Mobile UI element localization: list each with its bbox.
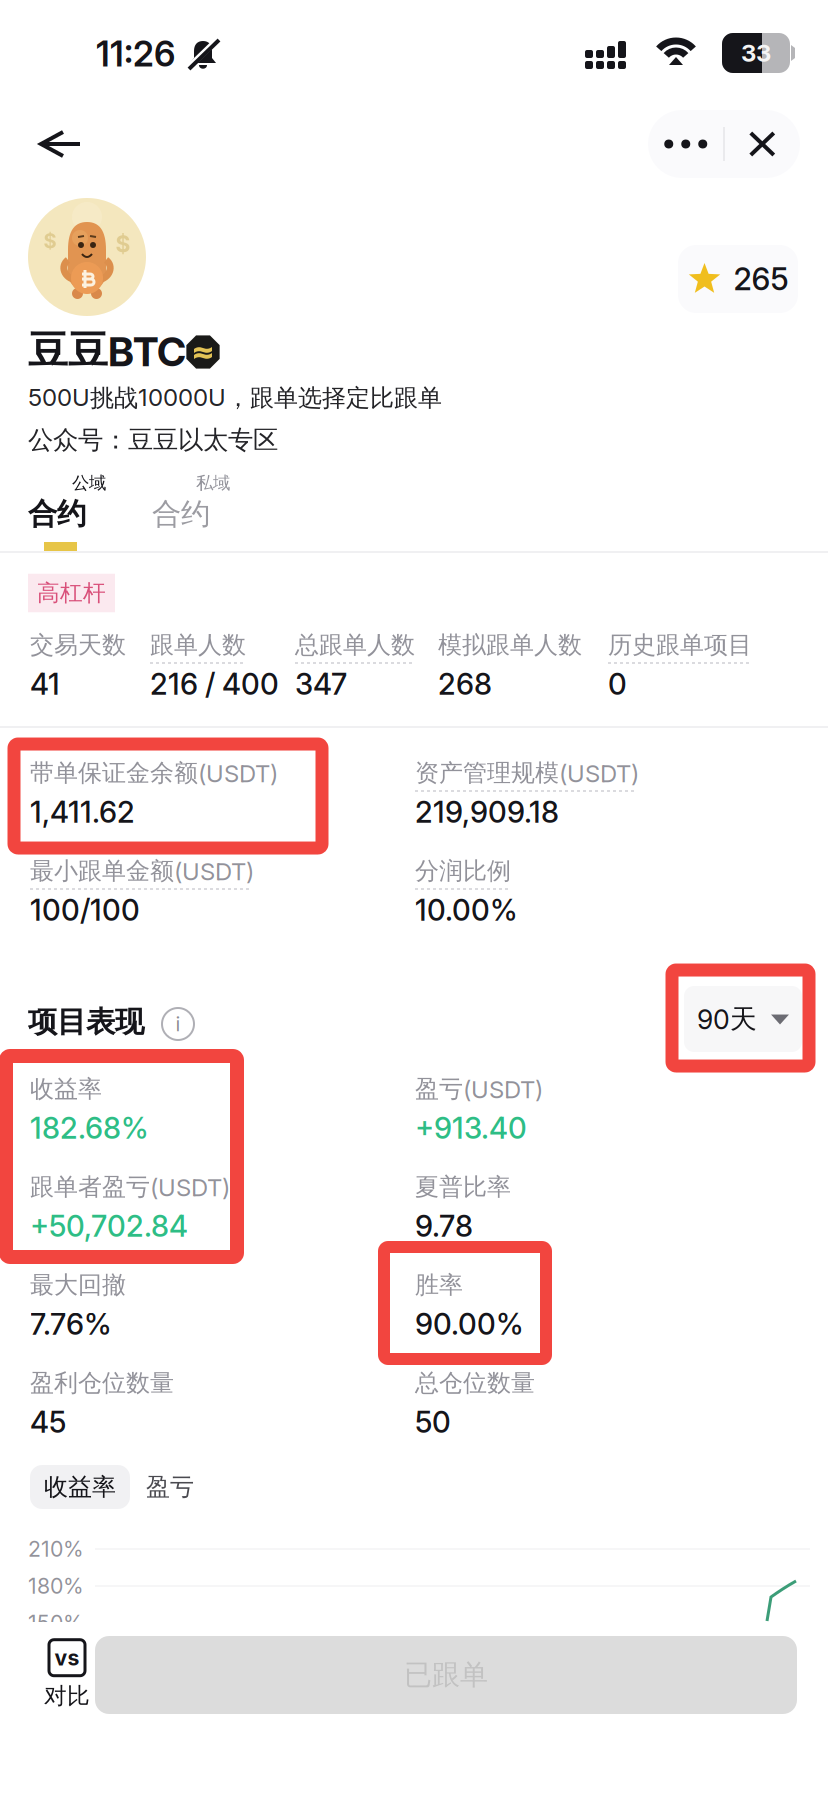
staticText: 盈利仓位数量 xyxy=(30,1368,174,1398)
button[interactable]: More options xyxy=(648,110,723,178)
staticText: 150% xyxy=(28,1610,84,1636)
staticText: 带单保证金余额(USDT) xyxy=(30,758,278,788)
staticText: 模拟跟单人数 xyxy=(438,630,582,660)
button[interactable]: 90天 xyxy=(684,986,802,1052)
staticText: 跟单人数 xyxy=(150,630,246,660)
button[interactable]: 265 xyxy=(678,245,798,313)
staticText: 公众号：豆豆以太专区 xyxy=(28,424,278,456)
staticText: 已跟单 xyxy=(404,1657,488,1693)
staticText: 45 xyxy=(30,1404,66,1440)
staticText: 7.76% xyxy=(30,1306,112,1342)
staticText: 90天 xyxy=(697,1002,757,1036)
staticText: $ xyxy=(115,230,130,258)
staticText: 10.00% xyxy=(415,892,518,928)
staticText: 对比 xyxy=(44,1682,90,1710)
staticText: 219,909.18 xyxy=(415,794,559,830)
staticText: +913.40 xyxy=(415,1110,527,1146)
staticText: 资产管理规模(USDT) xyxy=(415,758,639,788)
button[interactable]: 私域 xyxy=(148,468,266,554)
staticText: 收益率 xyxy=(30,1074,102,1104)
staticText: 90.00% xyxy=(415,1306,524,1342)
staticText: 41 xyxy=(30,666,60,702)
staticText: 182.68% xyxy=(30,1110,149,1146)
staticText: 最小跟单金额(USDT) xyxy=(30,856,254,886)
staticText: 9.78 xyxy=(415,1208,473,1244)
staticText: 347 xyxy=(295,666,347,702)
staticText: vs xyxy=(54,1645,79,1671)
staticText: 33 xyxy=(741,38,771,67)
staticText: 交易天数 xyxy=(30,630,126,660)
staticText: 总跟单人数 xyxy=(295,630,415,660)
staticText: 500U挑战10000U，跟单选择定比跟单 xyxy=(28,383,442,413)
button[interactable]: 已跟单 xyxy=(95,1636,797,1714)
staticText: 合约 xyxy=(152,495,210,532)
staticText: 胜率 xyxy=(415,1270,463,1300)
staticText: 夏普比率 xyxy=(415,1172,511,1202)
staticText: 私域 xyxy=(196,472,230,494)
staticText: 总仓位数量 xyxy=(415,1368,535,1398)
staticText: 210% xyxy=(28,1536,84,1562)
staticText: 0 xyxy=(608,666,627,702)
button[interactable]: 收益率 xyxy=(30,1465,130,1509)
button[interactable]: 盈亏 xyxy=(146,1465,226,1509)
staticText: 100/100 xyxy=(30,892,140,928)
staticText: 最大回撤 xyxy=(30,1270,126,1300)
staticText: 公域 xyxy=(72,472,106,494)
staticText: +50,702.84 xyxy=(30,1208,188,1244)
button[interactable]: Close xyxy=(725,110,800,178)
staticText: 180% xyxy=(28,1573,84,1599)
staticText: 216 / 400 xyxy=(150,666,279,702)
staticText: 50 xyxy=(415,1404,451,1440)
staticText: i xyxy=(175,1012,180,1036)
staticText: 268 xyxy=(438,666,492,702)
staticText: 合约 xyxy=(28,495,86,532)
staticText: 265 xyxy=(733,260,788,297)
button[interactable]: 公域 xyxy=(24,468,142,554)
staticText: 收益率 xyxy=(44,1472,116,1502)
button[interactable]: vs xyxy=(22,1634,112,1716)
staticText: 1,411.62 xyxy=(30,794,135,830)
staticText: 历史跟单项目 xyxy=(608,630,752,660)
staticText: 分润比例 xyxy=(415,856,511,886)
button[interactable]: Back xyxy=(22,108,102,180)
staticText: 11:26 xyxy=(96,33,175,75)
staticText: $ xyxy=(43,229,56,253)
staticText: 盈亏(USDT) xyxy=(415,1074,543,1104)
staticText: 盈亏 xyxy=(146,1472,194,1502)
staticText: 跟单者盈亏(USDT) xyxy=(30,1172,230,1202)
staticText: 豆豆BTC xyxy=(28,326,186,376)
staticText: 高杠杆 xyxy=(37,579,106,607)
staticText: 项目表现 xyxy=(28,1003,144,1040)
